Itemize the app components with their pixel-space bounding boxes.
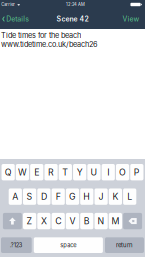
button[interactable]: C — [52, 213, 65, 229]
button[interactable]: P — [130, 164, 143, 180]
button[interactable]: Z — [23, 213, 36, 229]
staticText: www.tidetime.co.uk/beach26 — [1, 40, 98, 49]
staticText: return — [116, 241, 133, 249]
staticText: Z — [27, 216, 33, 226]
staticText: .?123 — [10, 242, 23, 249]
button[interactable]: V — [66, 213, 79, 229]
button[interactable]: N — [94, 213, 108, 229]
staticText: O — [119, 167, 126, 177]
staticText: D — [41, 191, 47, 202]
button[interactable]: M — [109, 213, 122, 229]
staticText: H — [83, 191, 90, 202]
staticText: L — [127, 191, 132, 202]
staticText: R — [48, 167, 54, 177]
button[interactable]: J — [94, 188, 108, 205]
staticText: U — [90, 167, 97, 177]
staticText: T — [62, 167, 68, 177]
staticText: V — [69, 216, 75, 226]
staticText: space — [60, 242, 76, 249]
button[interactable]: U — [87, 164, 100, 180]
button[interactable]: B — [80, 213, 93, 229]
staticText: Tide times for the beach — [1, 31, 81, 40]
button[interactable]: I — [102, 164, 115, 180]
staticText: A — [12, 191, 18, 202]
button[interactable]: A — [9, 188, 22, 205]
staticText: S — [27, 191, 33, 202]
staticText: W — [18, 167, 27, 177]
staticText: K — [112, 191, 118, 202]
button[interactable]: Q — [1, 164, 15, 180]
staticText: Scene 42 — [56, 15, 88, 23]
button[interactable]: X — [37, 213, 50, 229]
staticText: 12:24 AM — [66, 2, 85, 7]
staticText: E — [34, 167, 39, 177]
button[interactable]: R — [44, 164, 58, 180]
button[interactable]: W — [16, 164, 29, 180]
button[interactable]: D — [37, 188, 50, 205]
staticText: G — [69, 191, 76, 202]
button[interactable]: .?123 — [1, 237, 32, 253]
button[interactable]: F — [52, 188, 65, 205]
staticText: N — [98, 216, 105, 226]
button[interactable]: Y — [73, 164, 86, 180]
staticText: View — [123, 15, 140, 23]
button[interactable]: Shift — [3, 213, 22, 229]
staticText: B — [84, 216, 90, 226]
staticText: Carrier — [1, 2, 15, 7]
staticText: J — [99, 191, 104, 202]
button[interactable]: space — [34, 237, 103, 253]
button[interactable]: K — [109, 188, 122, 205]
staticText: C — [55, 216, 61, 226]
button[interactable]: Details — [0, 9, 33, 29]
button[interactable]: View — [119, 9, 145, 29]
staticText: P — [134, 167, 140, 177]
button[interactable]: S — [23, 188, 36, 205]
button[interactable]: L — [123, 188, 136, 205]
staticText: Y — [77, 167, 83, 177]
staticText: F — [56, 191, 61, 202]
staticText: I — [107, 167, 109, 177]
button[interactable]: O — [116, 164, 129, 180]
staticText: Q — [5, 167, 12, 177]
button[interactable]: return — [105, 237, 144, 253]
staticText: Details — [6, 15, 29, 23]
button[interactable]: H — [80, 188, 93, 205]
staticText: X — [41, 216, 47, 226]
staticText: M — [111, 216, 119, 226]
button[interactable]: T — [59, 164, 72, 180]
button[interactable]: Delete — [123, 213, 142, 229]
button[interactable]: G — [66, 188, 79, 205]
button[interactable]: E — [30, 164, 43, 180]
